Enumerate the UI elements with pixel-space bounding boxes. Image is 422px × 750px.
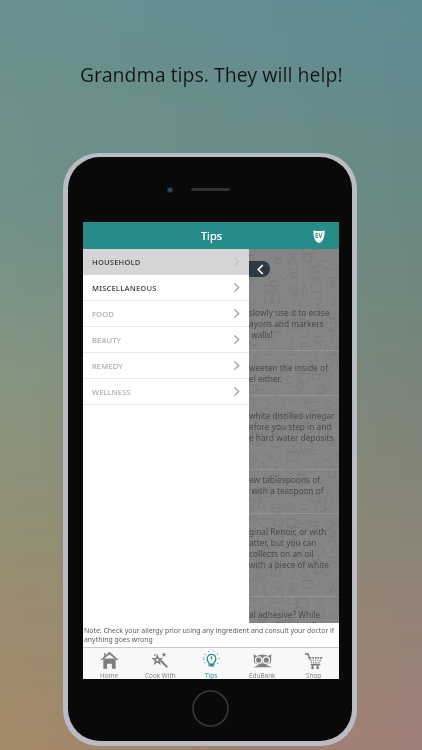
staticText: WELLNESS [92,387,131,397]
staticText: Tips [201,228,222,243]
staticText: walls! [249,329,273,340]
staticText: EduBank [249,671,276,679]
button[interactable]: BEAUTY [83,327,249,352]
staticText: REMEDY [92,361,123,371]
staticText: MISCELLANEOUS [92,283,157,293]
staticText: ginal Renoir, or with [249,526,327,537]
staticText: Home [100,671,119,679]
button[interactable]: WELLNESS [83,379,249,404]
staticText: Note: Check your allergy prior using any… [84,626,338,644]
button[interactable]: Cook With [135,648,186,679]
staticText: collects on an oil [249,548,314,559]
staticText: slowly use it to erase [249,307,330,318]
button[interactable]: FOOD [83,301,249,326]
button[interactable]: Back [228,261,270,277]
staticText: and to fill in hairline [249,620,327,631]
staticText: HOUSEHOLD [92,257,141,267]
staticText: ew tablespoons of [249,474,321,485]
button[interactable]: Tips [186,648,237,679]
staticText: al adhesive? While [249,609,321,620]
staticText: el either. [249,373,282,384]
staticText: e hard water deposits [249,432,334,443]
button[interactable]: App logo [313,229,325,243]
staticText: EV [315,231,323,239]
button[interactable]: MISCELLANEOUS [83,275,249,300]
staticText: weeten the inside of [249,362,328,373]
button[interactable]: HOUSEHOLD [83,249,249,274]
staticText: Shop [306,671,322,679]
staticText: Tips [205,671,218,679]
staticText: with a teaspoon of [249,485,324,496]
staticText: white distilled vinegar [249,410,335,421]
staticText: with a piece of white [249,559,329,570]
staticText: Cook With [145,671,176,679]
staticText: Grandma tips. They will help! [80,61,343,87]
button[interactable]: Home [83,648,135,679]
button[interactable]: REMEDY [83,353,249,378]
staticText: FOOD [92,309,114,319]
staticText: atter, but you can [249,537,317,548]
button[interactable]: Shop [288,648,339,679]
button[interactable]: EduBank [237,648,288,679]
staticText: efore you step in and [249,421,332,432]
staticText: BEAUTY [92,335,121,345]
staticText: ayons and markers [249,318,324,329]
